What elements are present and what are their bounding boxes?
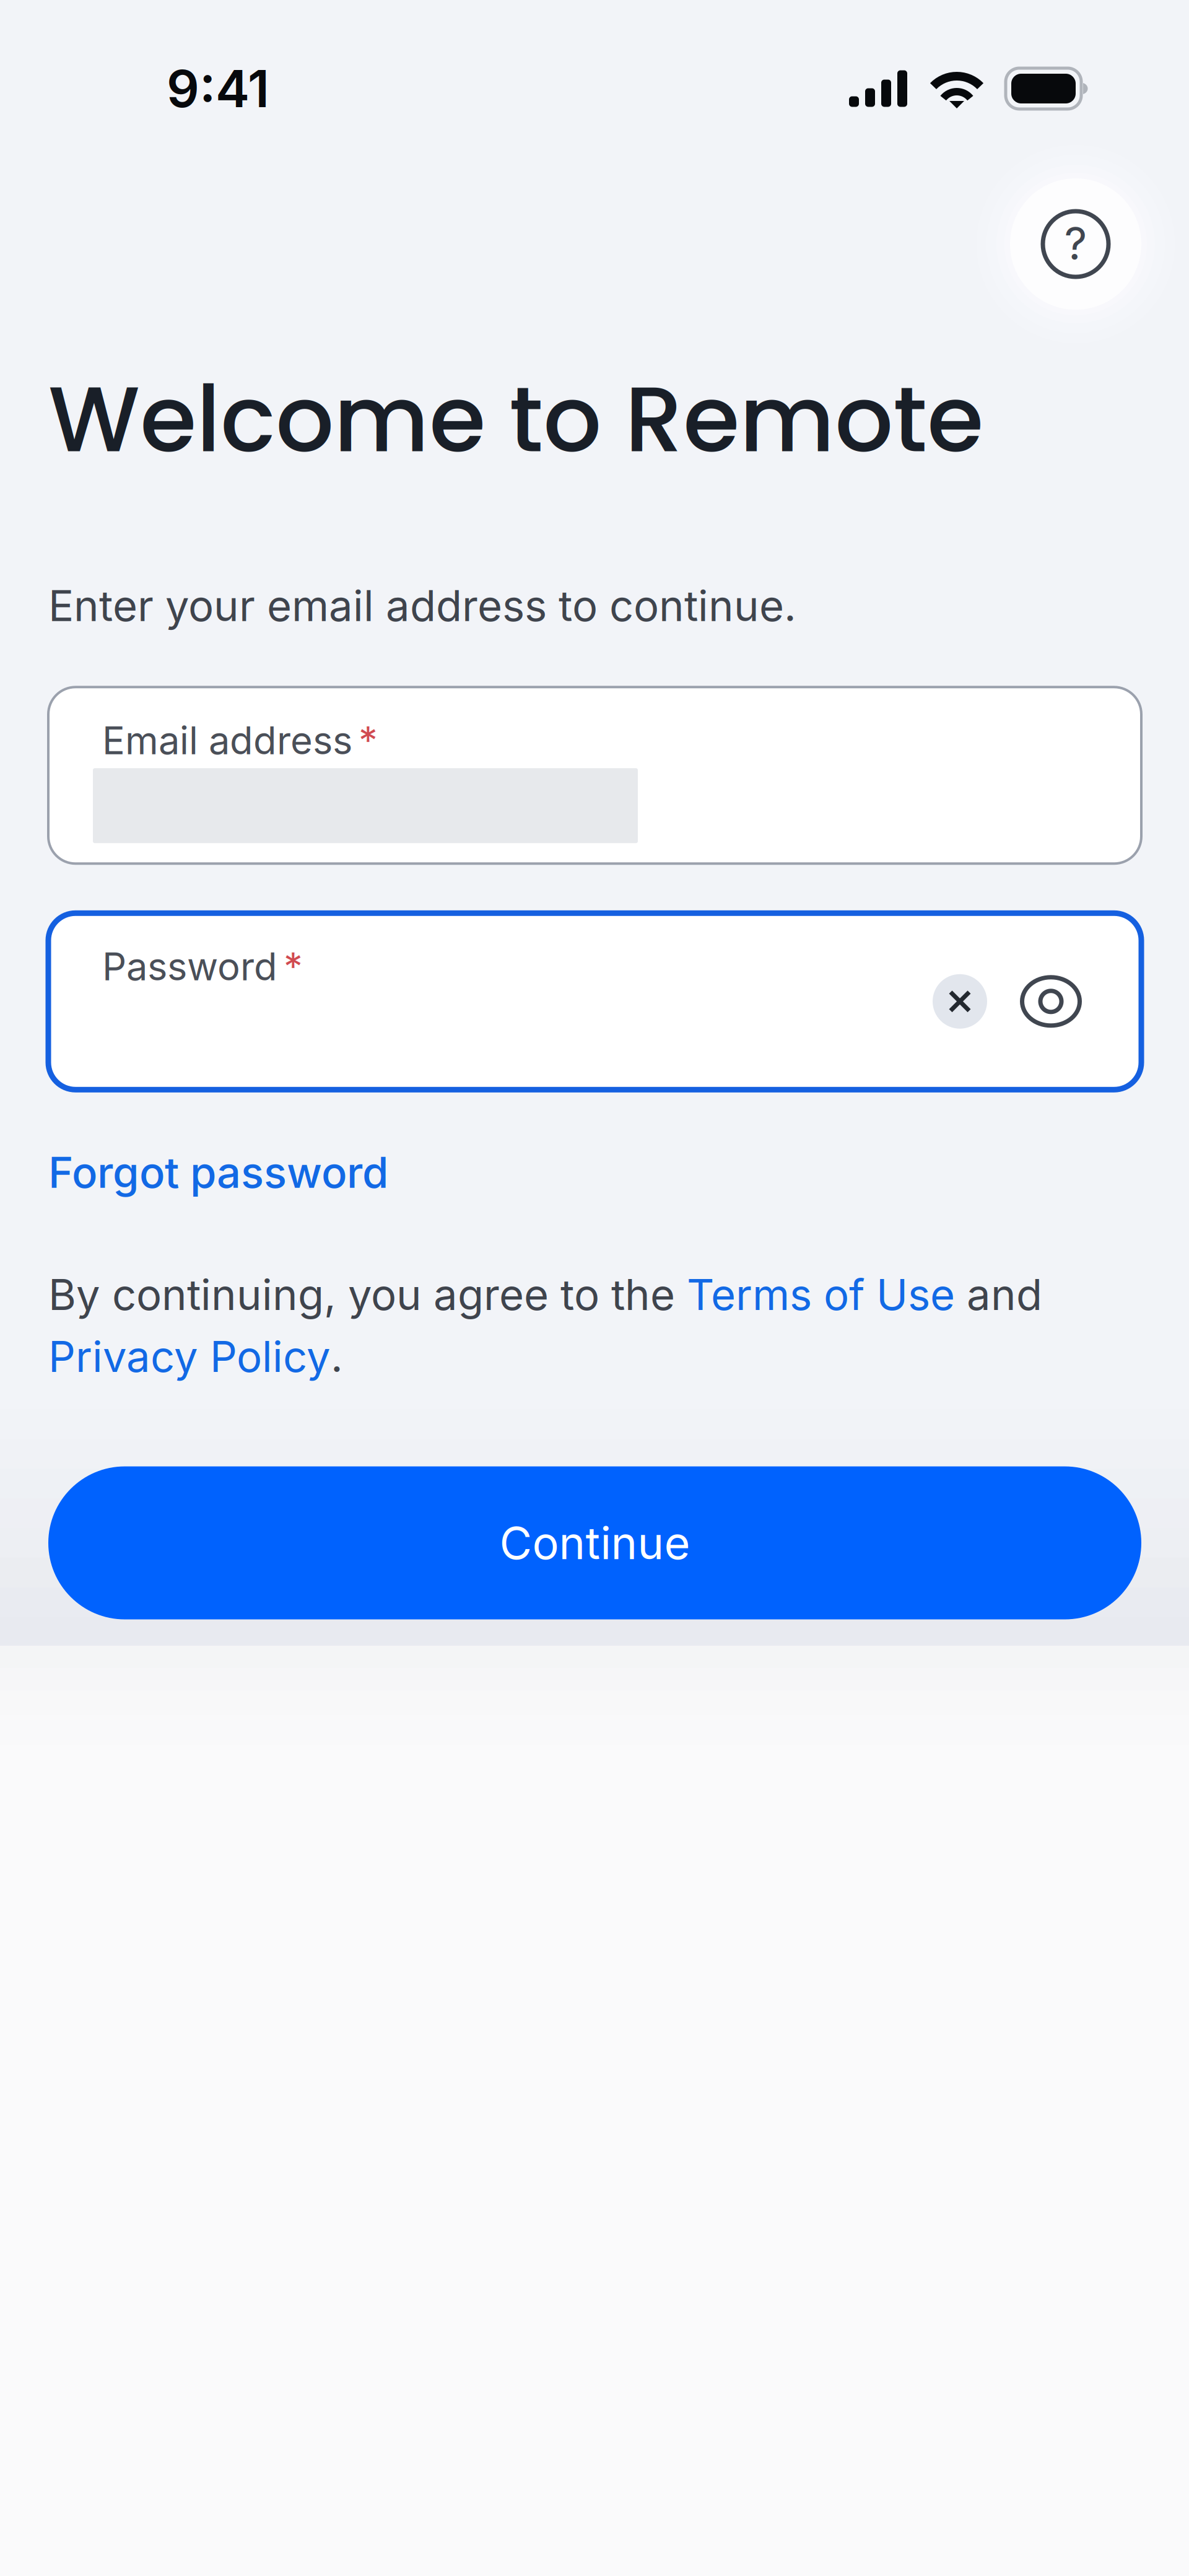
button[interactable]: Show password: [987, 975, 1082, 1028]
staticText: *: [359, 717, 378, 763]
button[interactable]: Privacy Policy: [48, 1331, 331, 1382]
staticText: Enter your email address to continue.: [48, 580, 796, 631]
staticText: and: [955, 1269, 1042, 1320]
staticText: .: [331, 1331, 343, 1382]
button[interactable]: Continue: [48, 1466, 1141, 1619]
staticText: Terms of Use: [687, 1269, 955, 1320]
staticText: ?: [1064, 216, 1087, 270]
staticText: Password: [102, 944, 277, 989]
button[interactable]: Terms of Use: [687, 1269, 955, 1320]
button[interactable]: Forgot password: [48, 1147, 388, 1198]
button[interactable]: Clear password: [933, 974, 987, 1029]
staticText: Forgot password: [48, 1147, 388, 1198]
staticText: Privacy Policy: [48, 1331, 331, 1382]
staticText: 9:41: [167, 58, 269, 120]
staticText: Continue: [499, 1516, 690, 1570]
button[interactable]: Help: [1010, 178, 1141, 310]
button[interactable]: Password: [48, 913, 1141, 1090]
staticText: *: [284, 944, 303, 989]
button[interactable]: Email address: [48, 687, 1141, 864]
staticText: Welcome to Remote: [48, 355, 983, 483]
staticText: Email address: [102, 717, 352, 763]
staticText: By continuing, you agree to the: [48, 1269, 687, 1320]
